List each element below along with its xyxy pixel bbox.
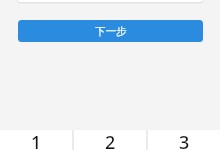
staticText: 下一步 <box>95 25 127 38</box>
button[interactable]: 3 <box>148 130 220 150</box>
button[interactable]: Phone number input field <box>16 0 204 4</box>
button[interactable]: 下一步 <box>18 20 203 42</box>
staticText: 1 <box>31 130 42 150</box>
staticText: 2 <box>105 130 116 150</box>
button[interactable]: 2 <box>74 130 146 150</box>
button[interactable]: 1 <box>0 130 72 150</box>
staticText: 3 <box>179 130 190 150</box>
